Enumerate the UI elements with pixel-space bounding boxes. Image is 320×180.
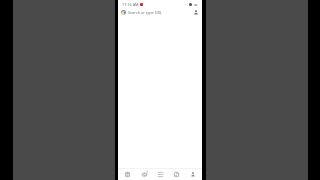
button[interactable]: Menu bbox=[153, 169, 167, 180]
button[interactable]: Profile bbox=[186, 169, 200, 180]
button[interactable]: Home bbox=[120, 169, 134, 180]
staticText: 11:16 AM bbox=[122, 2, 139, 7]
button[interactable]: Search or type URL bbox=[118, 2, 202, 22]
button[interactable]: Google Lens bbox=[137, 169, 151, 180]
button[interactable]: Account bbox=[192, 9, 199, 16]
button[interactable]: Tabs bbox=[169, 169, 183, 180]
staticText: Search or type URL bbox=[128, 10, 162, 15]
